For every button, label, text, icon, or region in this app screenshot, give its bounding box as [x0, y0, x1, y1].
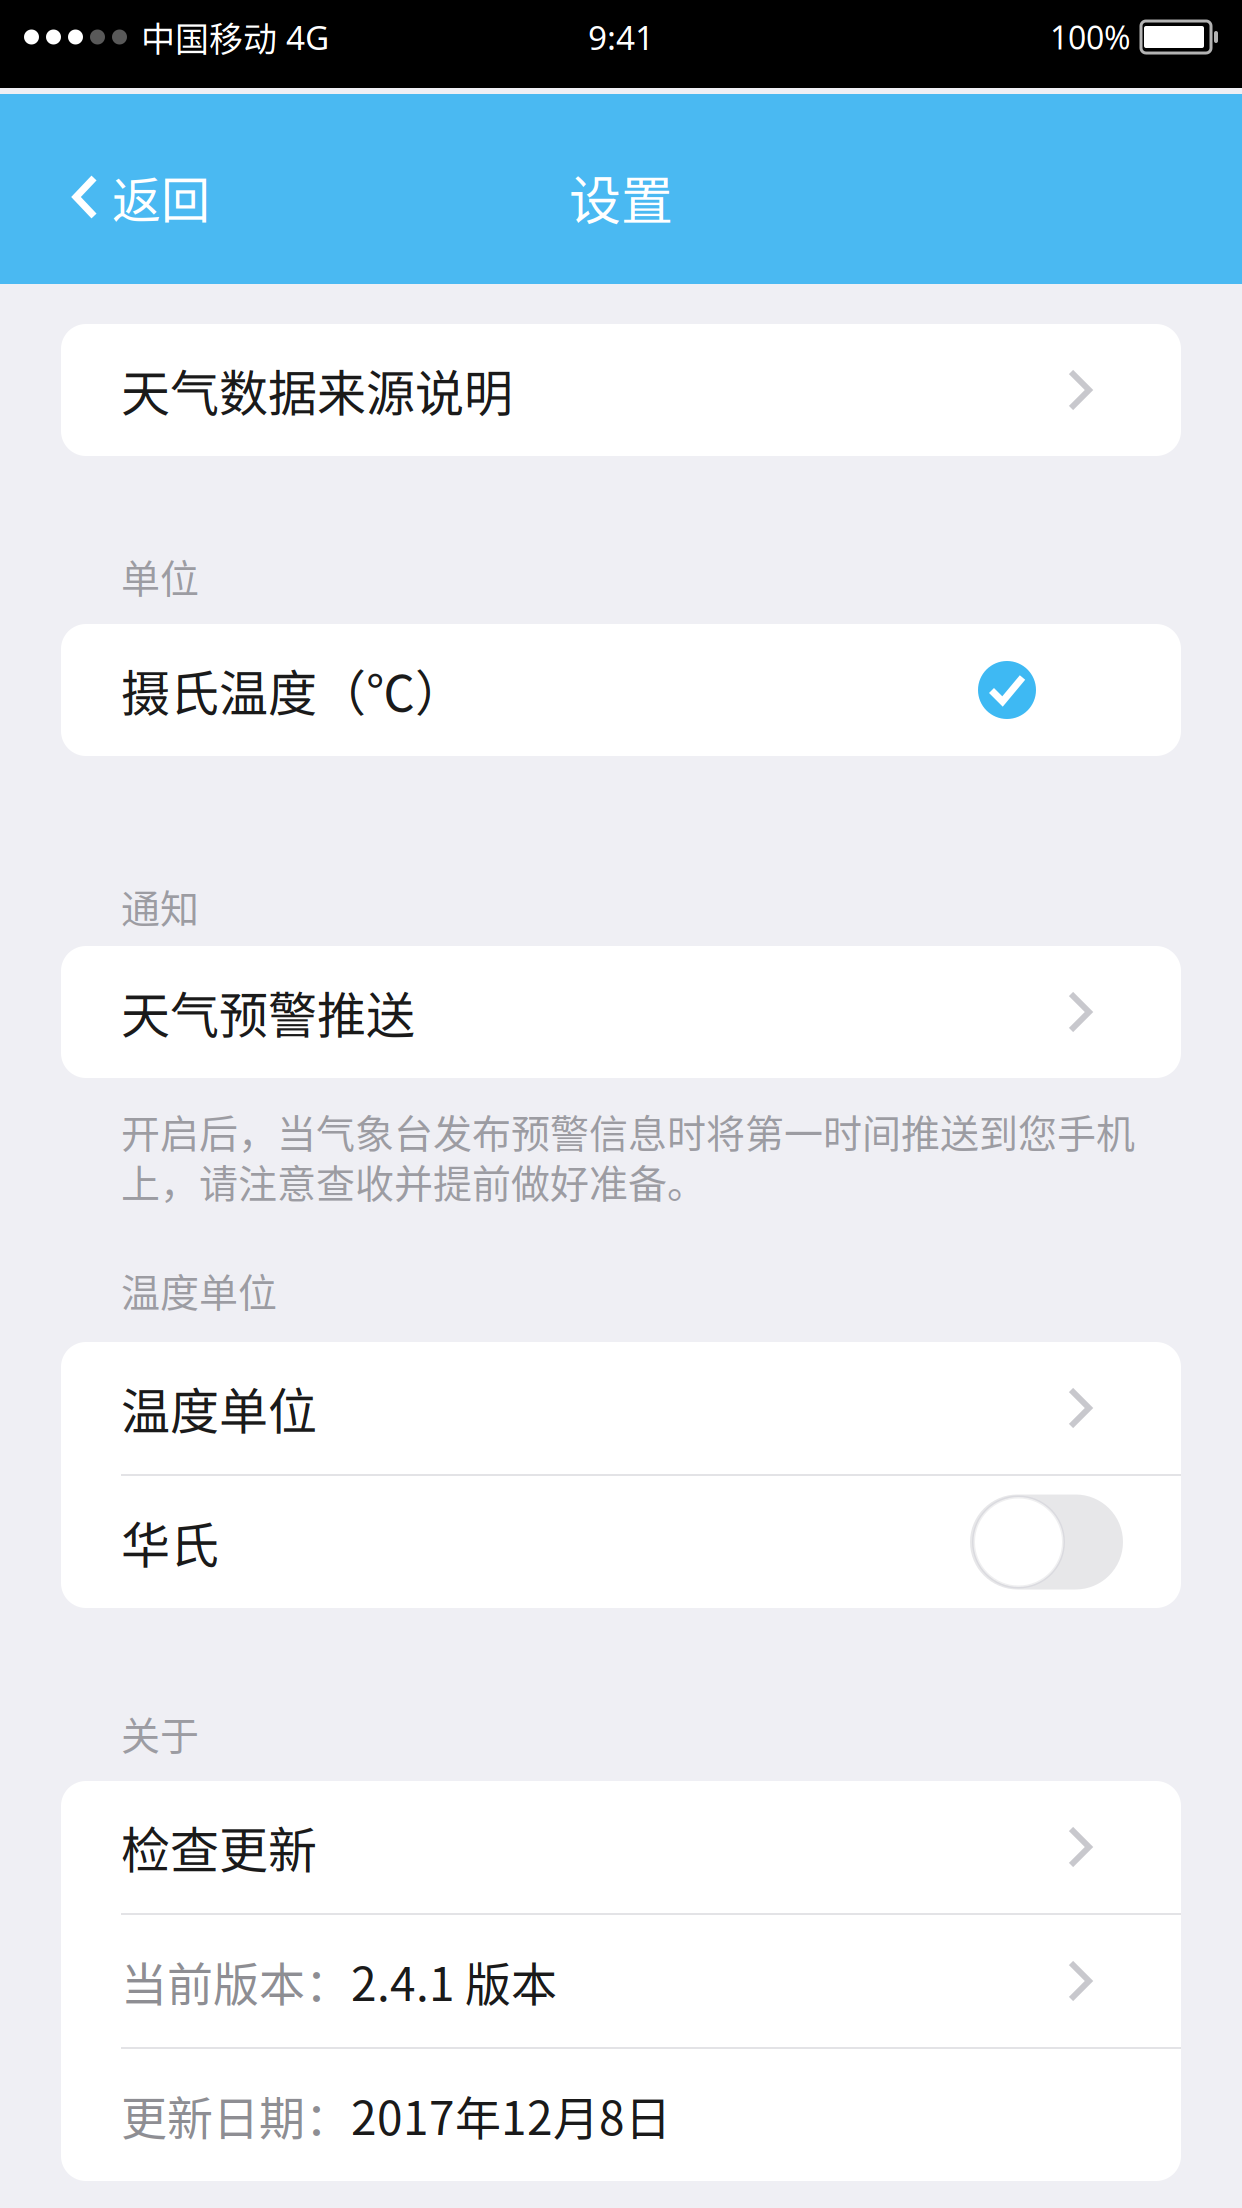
staticText: 当前版本：: [121, 1948, 351, 2014]
staticText: 设置: [569, 159, 673, 235]
staticText: 2.4.1 版本: [351, 1948, 557, 2014]
staticText: 单位: [121, 548, 199, 604]
staticText: 开启后，当气象台发布预警信息时将第一时间推送到您手机: [121, 1103, 1135, 1159]
staticText: 4G: [277, 15, 329, 59]
staticText: 关于: [121, 1705, 199, 1761]
staticText: 华氏: [121, 1506, 219, 1577]
staticText: 2017年12月8日: [351, 2082, 671, 2148]
staticText: 温度单位: [121, 1372, 317, 1443]
staticText: 中国移动: [141, 12, 277, 62]
button[interactable]: 摄氏温度（℃）: [61, 624, 1181, 756]
button[interactable]: 更新日期：: [61, 2049, 1181, 2181]
staticText: 上，请注意查收并提前做好准备。: [121, 1153, 706, 1209]
staticText: 天气预警推送: [121, 976, 415, 1047]
button[interactable]: 当前版本：: [61, 1915, 1181, 2047]
staticText: 100%: [1050, 16, 1131, 58]
staticText: 摄氏温度（℃）: [121, 654, 464, 725]
button[interactable]: 返回: [0, 133, 234, 244]
button[interactable]: 华氏: [61, 1476, 1181, 1608]
staticText: 9:41: [588, 15, 654, 59]
button[interactable]: 天气数据来源说明: [61, 324, 1181, 456]
staticText: 温度单位: [121, 1262, 277, 1318]
button[interactable]: 检查更新: [61, 1781, 1181, 1913]
staticText: 更新日期：: [121, 2082, 351, 2148]
staticText: 天气数据来源说明: [121, 354, 513, 425]
button[interactable]: 天气预警推送: [61, 946, 1181, 1078]
button[interactable]: 温度单位: [61, 1342, 1181, 1474]
staticText: 通知: [121, 878, 199, 934]
staticText: 返回: [112, 161, 210, 232]
staticText: 检查更新: [121, 1811, 317, 1882]
